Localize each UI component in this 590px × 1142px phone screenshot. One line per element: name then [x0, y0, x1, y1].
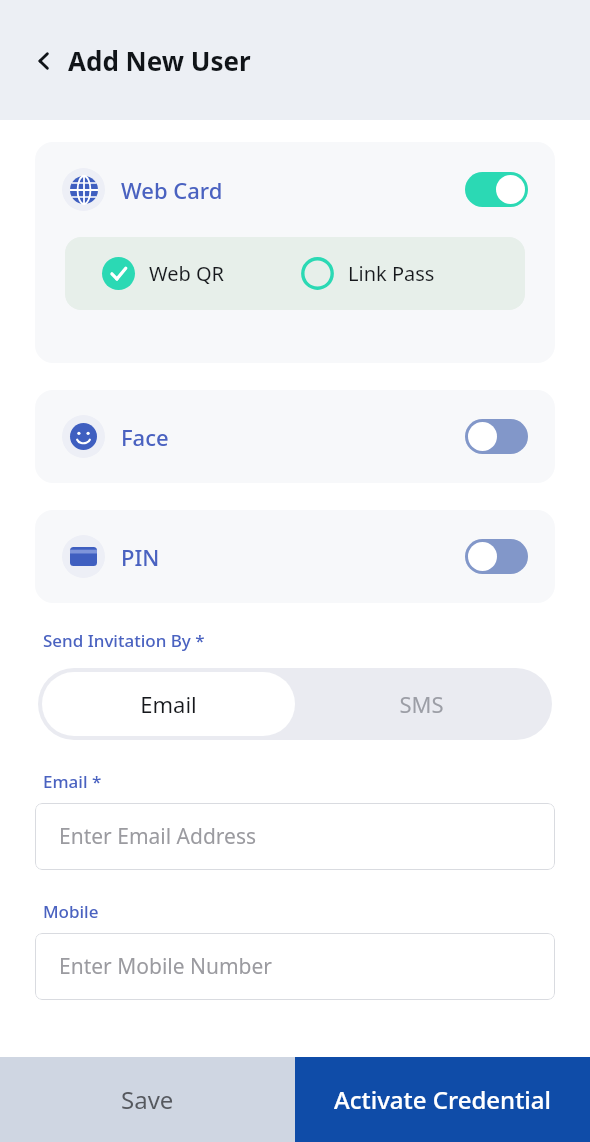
- button[interactable]: Activate Credential: [295, 1057, 590, 1142]
- staticText: Link Pass: [348, 260, 435, 287]
- staticText: SMS: [399, 689, 444, 719]
- staticText: Web Card: [121, 175, 223, 205]
- button[interactable]: Enter Mobile Number: [35, 933, 555, 1000]
- staticText: Web QR: [149, 260, 225, 287]
- button[interactable]: Enter Email Address: [35, 803, 555, 870]
- button[interactable]: Face: [35, 390, 555, 483]
- staticText: Enter Email Address: [59, 822, 257, 851]
- staticText: Save: [121, 1083, 174, 1116]
- button[interactable]: SMS: [295, 672, 548, 736]
- button[interactable]: PIN toggle: [465, 539, 528, 574]
- staticText: Enter Mobile Number: [59, 952, 273, 981]
- button[interactable]: PIN: [35, 510, 555, 603]
- staticText: Send Invitation By *: [43, 629, 205, 652]
- staticText: Activate Credential: [334, 1083, 552, 1116]
- staticText: Mobile: [43, 900, 99, 923]
- button[interactable]: Save: [0, 1057, 295, 1142]
- button[interactable]: Link Pass: [295, 237, 525, 310]
- staticText: Email: [140, 689, 197, 719]
- button[interactable]: Web Card toggle: [465, 172, 528, 207]
- button[interactable]: Face toggle: [465, 419, 528, 454]
- button[interactable]: Email: [42, 672, 295, 736]
- button[interactable]: Web QR: [65, 237, 295, 310]
- staticText: Face: [121, 422, 169, 452]
- staticText: Email *: [43, 770, 102, 793]
- staticText: Add New User: [68, 43, 251, 78]
- button[interactable]: Back: [28, 45, 60, 77]
- staticText: PIN: [121, 542, 160, 572]
